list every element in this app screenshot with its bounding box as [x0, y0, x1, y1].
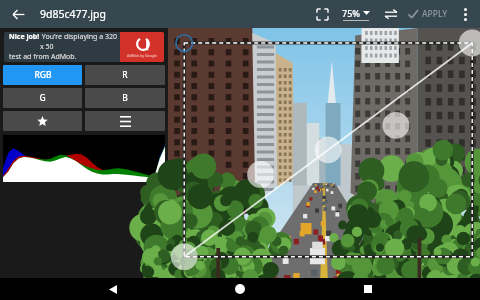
button[interactable]: 75%	[339, 7, 373, 21]
button[interactable]: Recent apps	[353, 278, 383, 300]
button[interactable]: More options	[454, 3, 476, 25]
button[interactable]: Home	[225, 278, 255, 300]
staticText: R	[122, 69, 128, 81]
button[interactable]: G	[3, 88, 82, 108]
button[interactable]: Menu	[85, 111, 165, 131]
button[interactable]: APPLY	[405, 8, 450, 20]
staticText: 9d85c477.jpg	[40, 7, 106, 21]
button[interactable]: Nice job!	[4, 32, 164, 62]
button[interactable]: R	[85, 65, 165, 85]
button[interactable]: Back	[6, 2, 30, 26]
staticText: Nice job!	[9, 32, 40, 42]
button[interactable]: RGB	[3, 65, 82, 85]
staticText: B	[122, 92, 128, 104]
button[interactable]: B	[85, 88, 165, 108]
staticText: You're displaying a 320 x 50	[40, 32, 117, 52]
button[interactable]: Compare	[379, 2, 403, 26]
button[interactable]: Favorites	[3, 111, 82, 131]
staticText: AdMob by Google	[127, 53, 158, 58]
staticText: G	[39, 92, 46, 104]
button[interactable]: Fullscreen	[309, 1, 335, 27]
staticText: 75%	[342, 7, 360, 19]
staticText: APPLY	[422, 8, 448, 20]
staticText: RGB	[34, 69, 52, 81]
staticText: test ad from AdMob.	[9, 52, 77, 62]
button[interactable]: Back	[98, 278, 128, 300]
